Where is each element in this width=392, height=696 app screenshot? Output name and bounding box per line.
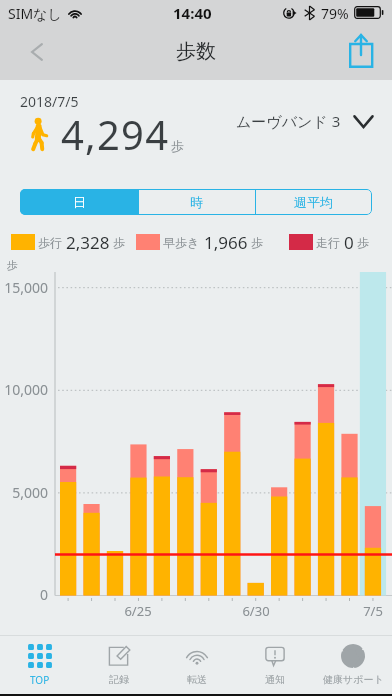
staticText: 歩行 bbox=[38, 235, 62, 250]
staticText: 5,000 bbox=[0, 483, 48, 502]
staticText: 1,966 bbox=[204, 231, 248, 254]
staticText: 7/5 bbox=[351, 602, 392, 620]
button[interactable]: Share bbox=[341, 25, 381, 80]
staticText: 6/30 bbox=[234, 602, 278, 620]
button[interactable]: 日 bbox=[20, 189, 138, 215]
button[interactable]: 転送 bbox=[158, 636, 236, 694]
staticText: TOP bbox=[30, 673, 50, 687]
button[interactable]: 歩行 bbox=[11, 230, 125, 254]
staticText: 週平均 bbox=[294, 194, 333, 210]
staticText: SIMなし bbox=[8, 4, 62, 23]
staticText: 歩 bbox=[171, 138, 184, 154]
staticText: 歩 bbox=[7, 258, 18, 272]
staticText: 記録 bbox=[109, 673, 129, 686]
button[interactable]: ムーヴバンド 3 bbox=[236, 107, 374, 135]
staticText: 通知 bbox=[265, 673, 285, 686]
staticText: 79% bbox=[321, 4, 349, 23]
staticText: 早歩き bbox=[163, 235, 200, 250]
staticText: 日 bbox=[73, 194, 86, 210]
staticText: 時 bbox=[190, 194, 203, 210]
staticText: 走行 bbox=[316, 235, 340, 250]
button[interactable]: 時 bbox=[138, 189, 255, 215]
button[interactable]: 通知 bbox=[236, 636, 314, 694]
staticText: 健康サポート bbox=[323, 673, 384, 686]
staticText: 転送 bbox=[187, 673, 207, 686]
staticText: 2,328 bbox=[66, 231, 110, 254]
staticText: 6/25 bbox=[116, 602, 160, 620]
button[interactable]: 早歩き bbox=[136, 230, 263, 254]
button[interactable]: 記録 bbox=[79, 636, 158, 694]
staticText: 歩数 bbox=[176, 39, 216, 64]
staticText: 2018/7/5 bbox=[20, 92, 79, 111]
button[interactable]: Back bbox=[14, 25, 58, 80]
staticText: 14:40 bbox=[173, 3, 212, 23]
staticText: 4,294 bbox=[61, 107, 170, 161]
staticText: 0 bbox=[0, 585, 48, 604]
button[interactable]: 走行 bbox=[289, 230, 369, 254]
staticText: 歩 bbox=[113, 235, 125, 250]
staticText: 歩 bbox=[357, 235, 369, 250]
staticText: 15,000 bbox=[0, 278, 48, 297]
staticText: 10,000 bbox=[0, 380, 48, 399]
button[interactable]: 週平均 bbox=[255, 189, 372, 215]
staticText: ムーヴバンド 3 bbox=[236, 111, 341, 131]
staticText: 歩 bbox=[251, 235, 263, 250]
button[interactable]: TOP bbox=[0, 636, 79, 694]
button[interactable]: 健康サポート bbox=[314, 636, 392, 694]
staticText: 0 bbox=[344, 231, 354, 254]
